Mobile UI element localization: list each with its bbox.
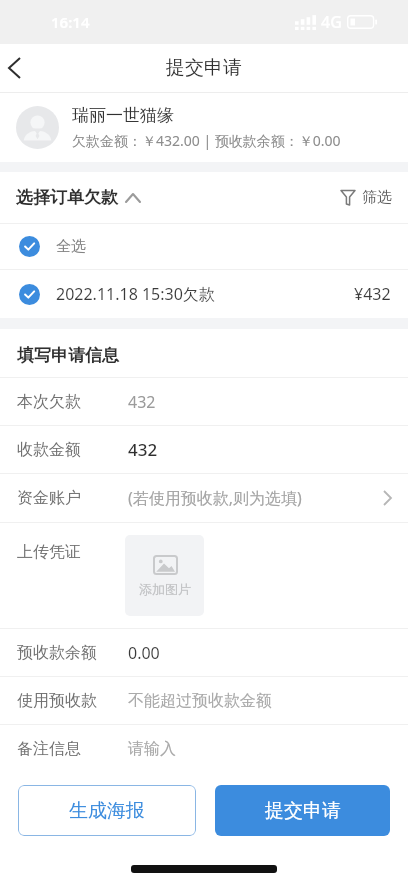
staticText: (若使用预收款,则为选填) <box>128 487 302 509</box>
staticText: 432 <box>128 438 158 461</box>
staticText: 2022.11.18 15:30欠款 <box>56 283 215 305</box>
staticText: 选择订单欠款 <box>16 187 118 208</box>
staticText: 欠款金额：￥432.00 | 预收款余额：￥0.00 <box>72 131 341 150</box>
button[interactable]: 选择订单欠款 <box>0 179 149 216</box>
staticText: 资金账户 <box>17 488 128 508</box>
staticText: ¥432 <box>354 283 391 305</box>
staticText: 本次欠款 <box>17 392 128 412</box>
button[interactable]: 瑞丽一世猫缘 <box>0 93 408 162</box>
button[interactable]: 生成海报 <box>18 785 196 836</box>
button[interactable]: 资金账户 <box>0 474 408 522</box>
button[interactable]: 备注信息 <box>0 725 408 772</box>
button[interactable]: 添加图片 <box>125 535 204 616</box>
button[interactable]: Back <box>0 44 34 92</box>
button[interactable]: 提交申请 <box>215 785 390 836</box>
staticText: 0.00 <box>128 642 160 664</box>
button[interactable]: 全选 <box>0 224 408 269</box>
staticText: 预收款余额 <box>17 643 128 663</box>
staticText: 提交申请 <box>265 799 341 823</box>
staticText: 432 <box>128 391 156 413</box>
staticText: 使用预收款 <box>17 691 128 711</box>
button[interactable]: 使用预收款 <box>0 677 408 724</box>
button[interactable]: 收款金额 <box>0 426 408 473</box>
staticText: 筛选 <box>362 188 392 207</box>
staticText: 添加图片 <box>139 581 191 597</box>
staticText: 瑞丽一世猫缘 <box>72 105 174 126</box>
staticText: 16:14 <box>51 12 90 32</box>
button[interactable]: 本次欠款 <box>0 378 408 425</box>
button[interactable]: 预收款余额 <box>0 629 408 676</box>
staticText: 备注信息 <box>17 739 128 759</box>
staticText: 全选 <box>56 237 86 256</box>
button[interactable]: 筛选 <box>330 180 408 215</box>
staticText: 提交申请 <box>166 56 242 80</box>
staticText: 不能超过预收款金额 <box>128 691 272 711</box>
staticText: 生成海报 <box>69 799 145 823</box>
staticText: 填写申请信息 <box>17 345 119 366</box>
staticText: 4G <box>321 11 342 33</box>
staticText: 收款金额 <box>17 440 128 460</box>
staticText: 请输入 <box>128 739 176 759</box>
button[interactable]: 2022.11.18 15:30欠款 <box>0 270 408 318</box>
staticText: 上传凭证 <box>17 542 125 562</box>
